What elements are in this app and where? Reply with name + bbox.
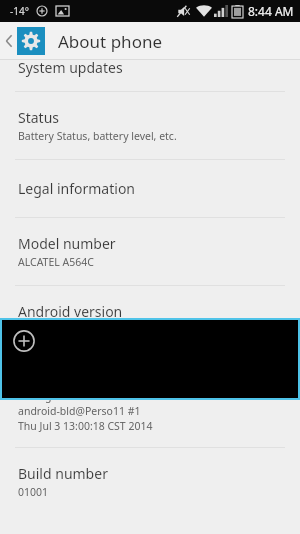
button[interactable]: Add: [10, 327, 38, 355]
button[interactable]: Build number: [0, 448, 300, 515]
button[interactable]: Status: [0, 92, 300, 159]
staticText: ALCATEL A564C: [18, 255, 94, 269]
staticText: 4.4.2: [18, 323, 42, 337]
button[interactable]: Legal information: [0, 160, 300, 217]
staticText: -14°: [10, 4, 29, 18]
staticText: Battery Status, battery level, etc.: [18, 129, 177, 143]
staticText: Build number: [18, 464, 108, 483]
staticText: Legal information: [18, 179, 136, 198]
staticText: 8:44 AM: [248, 3, 294, 19]
staticText: Android version: [18, 302, 123, 321]
staticText: Model number: [18, 234, 116, 253]
button[interactable]: Navigate up: [0, 23, 45, 59]
button[interactable]: Android version: [0, 286, 300, 353]
button[interactable]: Model number: [0, 218, 300, 285]
staticText: Thu Jul 3 13:00:18 CST 2014: [18, 419, 153, 433]
staticText: 3.4.0-g5314b55: [18, 389, 94, 403]
button[interactable]: System updates: [0, 60, 300, 91]
staticText: System updates: [18, 60, 123, 77]
staticText: Status: [18, 108, 60, 127]
staticText: android-bld@Perso11 #1: [18, 404, 141, 418]
button[interactable]: Kernel version: [0, 354, 300, 447]
staticText: About phone: [58, 30, 163, 53]
staticText: 01001: [18, 485, 49, 499]
